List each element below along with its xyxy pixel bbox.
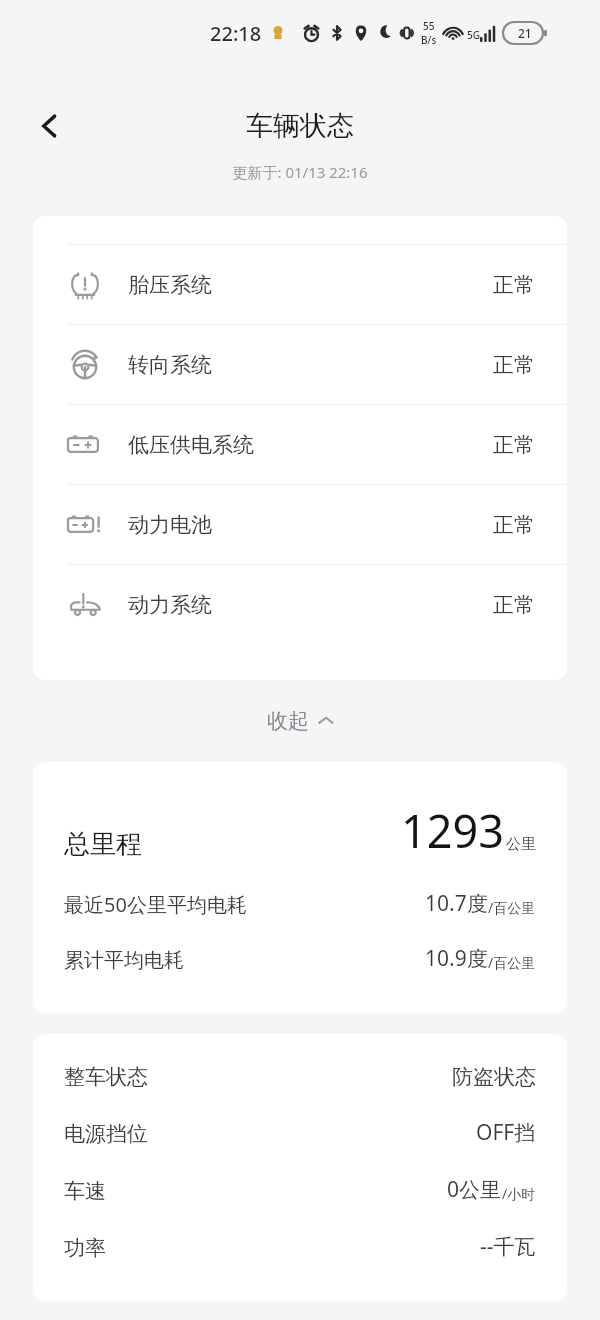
staticText: 5G (467, 28, 480, 42)
staticText: 1293 (401, 800, 504, 861)
staticText: /百公里 (488, 953, 536, 972)
button[interactable]: 收起 (0, 680, 600, 762)
staticText: 防盗状态 (452, 1064, 536, 1090)
button[interactable]: 胎压系统 (33, 245, 567, 324)
staticText: 公里 (506, 835, 536, 854)
staticText: 0公里 (447, 1175, 502, 1204)
staticText: OFF挡 (476, 1118, 536, 1147)
staticText: 21 (518, 25, 532, 41)
button[interactable]: 低压供电系统 (33, 405, 567, 484)
staticText: 车辆状态 (246, 109, 354, 143)
staticText: 10.9度 (425, 944, 488, 973)
staticText: --千瓦 (480, 1232, 536, 1261)
staticText: 正常 (493, 352, 535, 378)
staticText: 累计平均电耗 (64, 948, 184, 973)
staticText: 整车状态 (64, 1064, 148, 1090)
staticText: B/s (421, 33, 437, 47)
button[interactable]: 转向系统 (33, 325, 567, 404)
staticText: 更新于: 01/13 22:16 (0, 162, 600, 182)
staticText: 10.7度 (425, 889, 488, 918)
staticText: 动力电池 (128, 512, 212, 538)
button[interactable]: 动力电池 (33, 485, 567, 564)
staticText: 功率 (64, 1235, 106, 1261)
staticText: 电源挡位 (64, 1121, 148, 1147)
staticText: 正常 (493, 592, 535, 618)
button[interactable]: 动力系统 (33, 565, 567, 644)
staticText: 最近50公里平均电耗 (64, 891, 247, 918)
button[interactable]: 返回 (22, 98, 78, 154)
staticText: 正常 (493, 432, 535, 458)
staticText: 正常 (493, 272, 535, 298)
staticText: /百公里 (488, 898, 536, 917)
staticText: 车速 (64, 1178, 106, 1204)
staticText: 总里程 (64, 828, 142, 861)
staticText: 收起 (267, 708, 309, 734)
staticText: 胎压系统 (128, 272, 212, 298)
staticText: 动力系统 (128, 592, 212, 618)
staticText: /小时 (502, 1184, 536, 1203)
staticText: 低压供电系统 (128, 432, 254, 458)
staticText: 正常 (493, 512, 535, 538)
staticText: 55 (423, 19, 435, 33)
staticText: 22:18 (210, 20, 262, 47)
staticText: 转向系统 (128, 352, 212, 378)
